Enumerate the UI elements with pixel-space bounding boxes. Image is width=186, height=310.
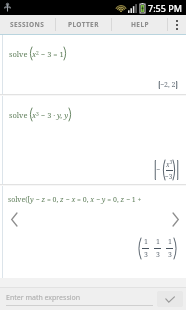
button[interactable]: Enter math expression — [6, 293, 153, 306]
button[interactable]: solve — [3, 35, 186, 94]
button[interactable]: SESSIONS — [0, 15, 55, 34]
staticText: solve — [9, 49, 28, 59]
button[interactable]: Submit expression — [157, 291, 183, 307]
button[interactable]: More options — [168, 15, 186, 34]
staticText: − — [156, 165, 161, 175]
staticText: −2, 2 — [160, 80, 176, 90]
staticText: solve([y − z = 0, z − x = 0, x − y = 0, … — [8, 195, 142, 205]
staticText: x3 − 3 · y, y — [32, 110, 69, 120]
staticText: 3 — [168, 250, 172, 260]
staticText: 1 — [156, 237, 160, 247]
staticText: PLOTTER — [68, 20, 99, 29]
button[interactable]: solve — [3, 96, 186, 184]
button[interactable]: Scroll right — [164, 208, 186, 230]
staticText: 1 — [144, 237, 148, 247]
staticText: −3 — [165, 172, 173, 181]
button[interactable]: solve([y − z = 0, z − x = 0, x − y = 0, … — [3, 186, 186, 278]
staticText: 3 — [156, 250, 160, 260]
staticText: 1 — [168, 237, 172, 247]
staticText: x2 − 3 = 1 — [32, 49, 64, 59]
button[interactable]: HELP — [112, 15, 167, 34]
staticText: x3 — [166, 159, 173, 169]
button[interactable]: Scroll left — [3, 208, 25, 230]
button[interactable]: PLOTTER — [56, 15, 111, 34]
staticText: 3 — [144, 250, 148, 260]
staticText: HELP — [131, 20, 149, 29]
staticText: 7:55 PM — [148, 2, 182, 14]
staticText: Enter math expression — [6, 293, 81, 303]
staticText: solve — [9, 110, 28, 120]
staticText: SESSIONS — [10, 20, 45, 29]
